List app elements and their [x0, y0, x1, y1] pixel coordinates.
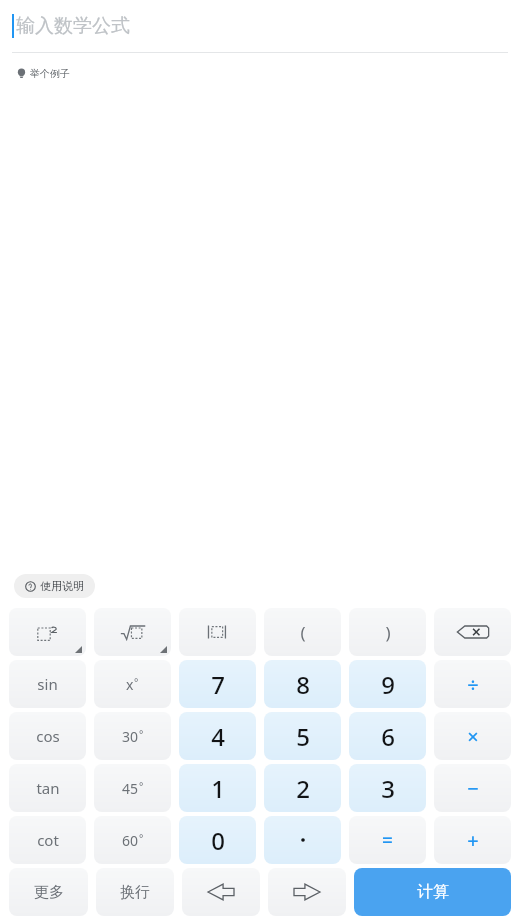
button[interactable]: ÷ — [434, 660, 511, 708]
button[interactable]: 小数点 — [264, 816, 341, 864]
button[interactable]: = — [349, 816, 426, 864]
button[interactable]: x度 — [94, 660, 171, 708]
button[interactable]: 5 — [264, 712, 341, 760]
staticText: sin — [37, 674, 58, 694]
button[interactable]: 0 — [179, 816, 256, 864]
button[interactable]: 6 — [349, 712, 426, 760]
button[interactable]: 开方 — [94, 608, 171, 656]
staticText: 6 — [381, 720, 395, 753]
staticText: tan — [36, 778, 60, 798]
button[interactable]: − — [434, 764, 511, 812]
staticText: ) — [385, 621, 391, 644]
staticText: 30 — [122, 727, 139, 746]
staticText: 5 — [296, 720, 310, 753]
staticText: 计算 — [417, 882, 449, 902]
button[interactable]: 计算 — [354, 868, 511, 916]
button[interactable]: 右移 — [268, 868, 346, 916]
button[interactable]: sin — [9, 660, 86, 708]
staticText: 7 — [211, 668, 225, 701]
button[interactable]: 举个例子 — [14, 65, 72, 82]
staticText: ° — [134, 675, 139, 689]
button[interactable]: 1 — [179, 764, 256, 812]
staticText: 使用说明 — [40, 579, 84, 593]
staticText: ° — [139, 779, 144, 793]
staticText: − — [467, 775, 479, 802]
button[interactable]: 45度 — [94, 764, 171, 812]
button[interactable]: ) — [349, 608, 426, 656]
staticText: 9 — [381, 668, 395, 701]
staticText: ÷ — [467, 671, 479, 698]
button[interactable]: 4 — [179, 712, 256, 760]
staticText: 3 — [381, 772, 395, 805]
staticText: ( — [300, 621, 306, 644]
button[interactable]: 绝对值 — [179, 608, 256, 656]
button[interactable]: 使用说明 — [14, 574, 95, 598]
staticText: ° — [139, 727, 144, 741]
staticText: 4 — [211, 720, 225, 753]
button[interactable]: 平方 — [9, 608, 86, 656]
staticText: 举个例子 — [30, 67, 70, 80]
button[interactable]: 7 — [179, 660, 256, 708]
button[interactable]: 8 — [264, 660, 341, 708]
staticText: 45 — [122, 779, 139, 798]
button[interactable]: 60度 — [94, 816, 171, 864]
staticText: 0 — [211, 824, 225, 857]
button[interactable]: cos — [9, 712, 86, 760]
button[interactable]: 退格 — [434, 608, 511, 656]
button[interactable]: ( — [264, 608, 341, 656]
staticText: 更多 — [34, 883, 64, 902]
staticText: × — [467, 723, 479, 750]
button[interactable]: cot — [9, 816, 86, 864]
staticText: 2 — [296, 772, 310, 805]
staticText: + — [467, 827, 479, 854]
staticText: 60 — [122, 831, 139, 850]
button[interactable]: 左移 — [182, 868, 260, 916]
button[interactable]: 2 — [264, 764, 341, 812]
staticText: 8 — [296, 668, 310, 701]
button[interactable]: 9 — [349, 660, 426, 708]
button[interactable]: tan — [9, 764, 86, 812]
staticText: ° — [139, 831, 144, 845]
button[interactable]: + — [434, 816, 511, 864]
staticText: x — [126, 675, 134, 694]
staticText: 输入数学公式 — [16, 14, 130, 38]
staticText: cos — [36, 726, 60, 746]
button[interactable]: 换行 — [96, 868, 174, 916]
staticText: = — [382, 827, 393, 853]
staticText: 换行 — [120, 883, 150, 902]
button[interactable]: 30度 — [94, 712, 171, 760]
button[interactable]: 3 — [349, 764, 426, 812]
button[interactable]: × — [434, 712, 511, 760]
staticText: 1 — [211, 772, 225, 805]
button[interactable]: 更多 — [9, 868, 88, 916]
staticText: cot — [37, 830, 59, 850]
